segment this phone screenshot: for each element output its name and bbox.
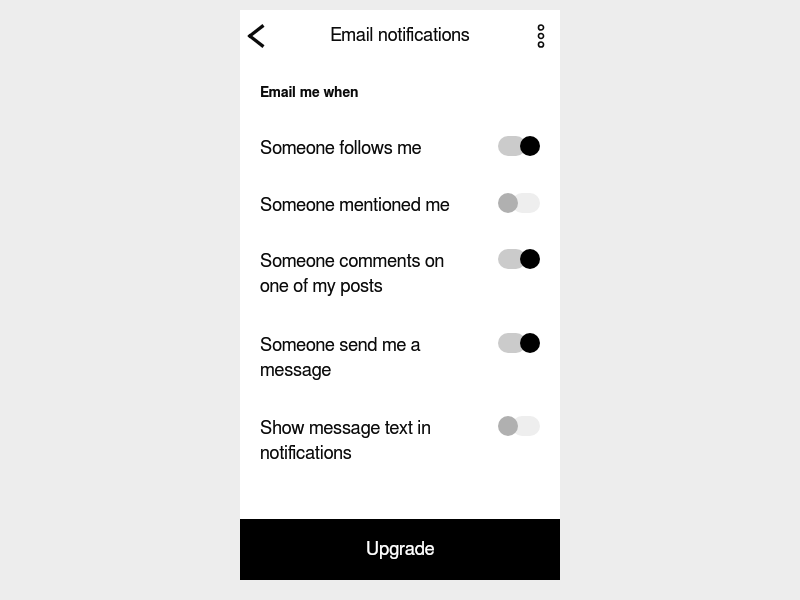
staticText: Someone send me a message [260,336,460,380]
staticText: Someone mentioned me [260,196,450,214]
button[interactable]: Someone mentioned me [498,193,540,213]
staticText: Upgrade [366,540,435,558]
button[interactable]: More options [524,19,558,53]
staticText: Email notifications [330,26,470,44]
staticText: Email me when [260,86,359,100]
staticText: Someone send me a message [260,336,460,380]
staticText: Someone follows me [260,139,422,157]
button[interactable]: Someone send me a message [240,336,560,380]
button[interactable]: Show message text in notifications [498,416,540,436]
staticText: Someone comments on one of my posts [260,252,460,296]
button[interactable]: Upgrade [240,519,560,580]
button[interactable]: Back [239,19,273,53]
staticText: Show message text in notifications [260,419,460,463]
button[interactable]: Someone send me a message [498,333,540,353]
button[interactable]: Someone comments on one of my posts [240,252,560,296]
staticText: Someone mentioned me [260,196,450,214]
button[interactable]: Someone follows me [240,139,560,165]
button[interactable]: Someone mentioned me [240,196,560,222]
staticText: Email notifications [330,26,470,44]
staticText: Email me when [260,86,359,100]
staticText: Show message text in notifications [260,419,460,463]
button[interactable]: Someone follows me [498,136,540,156]
button[interactable]: Show message text in notifications [240,419,560,463]
staticText: Someone comments on one of my posts [260,252,460,296]
staticText: Someone follows me [260,139,422,157]
button[interactable]: Someone comments on one of my posts [498,249,540,269]
